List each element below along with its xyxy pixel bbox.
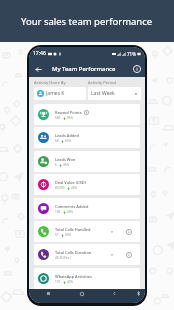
staticText: 60% — [65, 233, 71, 237]
button[interactable]: Deal Value (USD) — [34, 174, 140, 195]
button[interactable]: James K — [34, 87, 86, 100]
staticText: 57 — [55, 233, 59, 237]
staticText: 150 — [55, 210, 61, 214]
staticText: 45:35 (Hrs.) — [55, 256, 71, 260]
staticText: 68 — [55, 139, 59, 143]
button[interactable]: Expand — [108, 228, 115, 235]
button[interactable]: Expand — [108, 251, 115, 258]
staticText: 6 — [55, 163, 57, 167]
button[interactable]: Leads Won — [34, 151, 140, 172]
staticText: Your sales team performance — [21, 15, 153, 28]
button[interactable]: Details — [125, 251, 132, 258]
staticText: 71% — [127, 51, 136, 57]
staticText: Deal Value (USD) — [55, 180, 86, 185]
staticText: Activity Period — [88, 80, 117, 86]
staticText: Reward Points — [55, 110, 82, 115]
button[interactable]: Details — [125, 228, 132, 235]
staticText: James K — [46, 90, 65, 97]
staticText: Total Calls Duration — [55, 250, 92, 255]
staticText: Activity Done By — [34, 80, 66, 86]
staticText: Leads Added — [55, 133, 79, 138]
button[interactable]: Total Calls Handled — [34, 221, 140, 242]
button[interactable]: Home — [65, 288, 98, 299]
staticText: 46% — [63, 163, 69, 167]
staticText: WhatsApp Activities — [55, 274, 92, 279]
staticText: 560 — [55, 116, 61, 120]
staticText: Comments Added — [55, 204, 89, 209]
staticText: 53% — [65, 139, 71, 143]
button[interactable]: Recents — [31, 288, 65, 299]
staticText: My Team Performance — [52, 65, 116, 73]
button[interactable]: Information — [132, 64, 142, 74]
staticText: 17:46 — [33, 50, 46, 57]
staticText: 197 — [55, 280, 61, 284]
staticText: Total Calls Handled — [55, 227, 91, 232]
staticText: 40% — [67, 280, 73, 284]
button[interactable]: Comments Added — [34, 198, 140, 219]
button[interactable]: Last Week — [88, 87, 141, 100]
staticText: 45% — [71, 186, 77, 190]
staticText: 80,000 — [55, 186, 65, 190]
staticText: 96% — [67, 116, 73, 120]
button[interactable]: Total Calls Duration — [34, 244, 140, 265]
button[interactable]: Leads Added — [34, 127, 140, 148]
staticText: 46% — [67, 210, 73, 214]
button[interactable]: Reward Points — [34, 104, 140, 125]
button[interactable]: WhatsApp Activities — [34, 268, 140, 289]
staticText: Last Week — [91, 90, 115, 97]
button[interactable]: Back — [33, 64, 43, 74]
staticText: Leads Won — [55, 157, 76, 162]
button[interactable]: Back — [98, 288, 131, 299]
